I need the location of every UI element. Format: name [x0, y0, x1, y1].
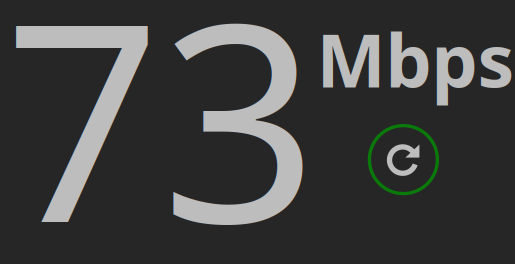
staticText: 73 [4, 0, 318, 264]
staticText: Mbps [316, 10, 514, 108]
button[interactable]: Refresh [369, 126, 437, 194]
